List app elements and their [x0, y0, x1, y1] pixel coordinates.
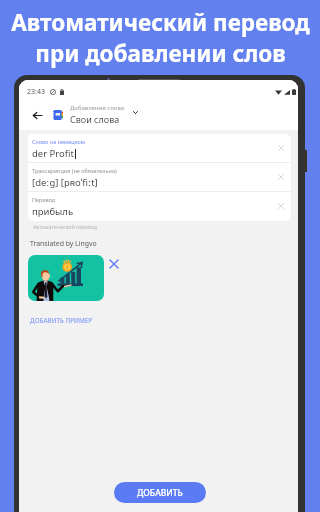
button[interactable]: Expand: [129, 106, 141, 118]
button[interactable]: Clear field: [273, 198, 289, 214]
staticText: при добавлении слов: [35, 38, 286, 69]
staticText: Автоматический перевод: [33, 223, 98, 230]
staticText: Транскрипция (не обязательно): [32, 167, 117, 174]
staticText: Слово на немецком: [32, 138, 86, 145]
staticText: Автоматический перевод: [11, 7, 310, 38]
staticText: 23:43: [27, 87, 45, 97]
button[interactable]: Remove example: [107, 257, 121, 271]
staticText: ДОБАВИТЬ ПРИМЕР: [30, 316, 93, 325]
staticText: ДОБАВИТЬ: [137, 487, 183, 499]
staticText: Перевод: [32, 196, 56, 203]
staticText: Translated by Lingvo: [30, 239, 97, 248]
button[interactable]: ДОБАВИТЬ ПРИМЕР: [27, 313, 96, 328]
button[interactable]: Clear field: [273, 140, 289, 156]
staticText: Добавление слова: [70, 104, 125, 112]
button[interactable]: Back: [27, 105, 47, 125]
staticText: прибыль: [32, 205, 74, 218]
button[interactable]: Clear field: [273, 169, 289, 185]
staticText: Свои слова: [70, 113, 120, 125]
button[interactable]: ДОБАВИТЬ: [114, 482, 206, 503]
staticText: [deːɡ] [pʀoˈfiːt]: [32, 176, 98, 189]
staticText: der Profit: [32, 147, 74, 160]
button[interactable]: Example image: [28, 255, 104, 301]
